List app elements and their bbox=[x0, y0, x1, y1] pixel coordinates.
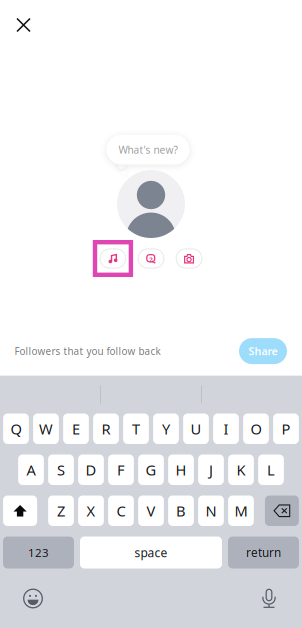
button[interactable]: N bbox=[198, 495, 224, 526]
button[interactable]: Share bbox=[239, 338, 287, 364]
staticText: F bbox=[117, 460, 125, 480]
button[interactable]: W bbox=[33, 413, 59, 444]
button[interactable]: H bbox=[168, 454, 194, 485]
staticText: space bbox=[134, 544, 167, 561]
staticText: I bbox=[223, 419, 228, 439]
button[interactable]: U bbox=[183, 413, 209, 444]
button[interactable]: Q bbox=[3, 413, 29, 444]
button[interactable]: Add photo bbox=[170, 240, 208, 277]
button[interactable]: S bbox=[48, 454, 74, 485]
button[interactable]: K bbox=[228, 454, 254, 485]
staticText: C bbox=[116, 501, 125, 521]
staticText: return bbox=[246, 544, 281, 560]
button[interactable]: L bbox=[258, 454, 284, 485]
staticText: B bbox=[176, 501, 186, 521]
button[interactable]: Shift bbox=[3, 495, 37, 526]
button[interactable]: Add prompt bbox=[132, 240, 170, 277]
staticText: N bbox=[205, 501, 216, 521]
button[interactable]: R bbox=[93, 413, 119, 444]
staticText: R bbox=[101, 419, 110, 439]
staticText: D bbox=[85, 460, 96, 480]
button[interactable]: I bbox=[213, 413, 239, 444]
staticText: Share bbox=[248, 344, 277, 358]
button[interactable]: V bbox=[138, 495, 164, 526]
button[interactable]: F bbox=[108, 454, 134, 485]
button[interactable]: G bbox=[138, 454, 164, 485]
button[interactable]: O bbox=[243, 413, 269, 444]
staticText: A bbox=[26, 460, 35, 480]
staticText: What's new? bbox=[118, 143, 177, 157]
staticText: L bbox=[267, 460, 275, 480]
button[interactable]: D bbox=[78, 454, 104, 485]
button[interactable]: Y bbox=[153, 413, 179, 444]
button[interactable]: A bbox=[18, 454, 44, 485]
button[interactable]: Close bbox=[6, 8, 40, 42]
staticText: O bbox=[250, 419, 261, 439]
button[interactable]: Add music bbox=[94, 240, 132, 277]
staticText: Followers that you follow back bbox=[15, 344, 161, 358]
staticText: X bbox=[86, 501, 95, 521]
button[interactable]: Z bbox=[48, 495, 74, 526]
button[interactable]: T bbox=[123, 413, 149, 444]
staticText: W bbox=[39, 419, 53, 439]
button[interactable]: X bbox=[78, 495, 104, 526]
staticText: Y bbox=[162, 419, 170, 439]
staticText: J bbox=[209, 460, 213, 480]
staticText: T bbox=[132, 419, 140, 439]
staticText: K bbox=[236, 460, 245, 480]
button[interactable]: C bbox=[108, 495, 134, 526]
button[interactable]: Emoji keyboard bbox=[17, 582, 49, 614]
button[interactable]: Dictation bbox=[253, 582, 285, 614]
staticText: G bbox=[145, 460, 156, 480]
staticText: E bbox=[72, 419, 80, 439]
button[interactable]: Delete bbox=[265, 495, 299, 526]
button[interactable]: J bbox=[198, 454, 224, 485]
staticText: S bbox=[57, 460, 65, 480]
staticText: 123 bbox=[28, 545, 49, 560]
staticText: ? bbox=[149, 255, 152, 265]
staticText: H bbox=[175, 460, 186, 480]
button[interactable]: M bbox=[228, 495, 254, 526]
button[interactable]: B bbox=[168, 495, 194, 526]
button[interactable]: E bbox=[63, 413, 89, 444]
button[interactable]: return bbox=[228, 536, 299, 568]
button[interactable]: P bbox=[273, 413, 299, 444]
staticText: Z bbox=[57, 501, 65, 521]
staticText: V bbox=[146, 501, 155, 521]
button[interactable]: 123 bbox=[3, 536, 74, 568]
button[interactable]: space bbox=[80, 536, 222, 568]
staticText: P bbox=[281, 419, 290, 439]
staticText: Q bbox=[10, 419, 21, 439]
staticText: M bbox=[234, 501, 247, 521]
staticText: U bbox=[190, 419, 201, 439]
